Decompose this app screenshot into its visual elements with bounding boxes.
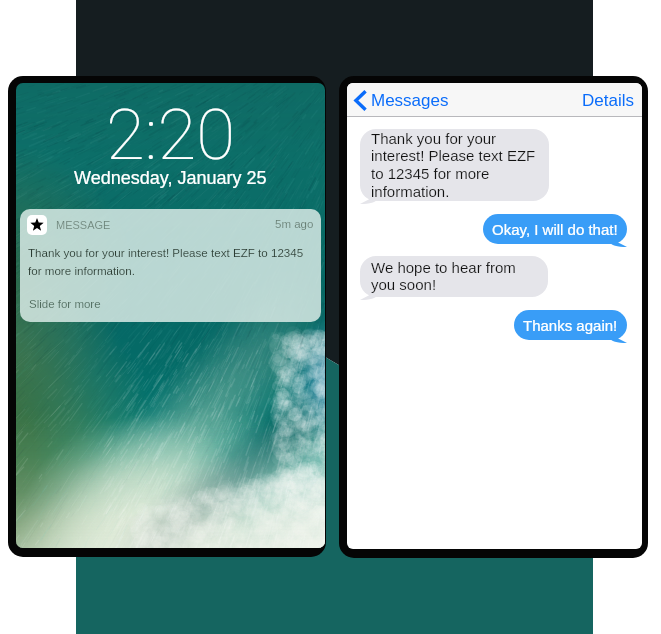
staticText: Thank you for your interest! Please text…: [28, 246, 319, 278]
button[interactable]: Thank you for your interest! Please text…: [360, 129, 555, 205]
staticText: Wednesday, January 25: [74, 168, 267, 188]
button[interactable]: Details: [574, 83, 642, 117]
staticText: Messages: [371, 91, 449, 110]
button[interactable]: Thanks again!: [514, 310, 635, 344]
staticText: Thanks again!: [523, 317, 618, 334]
staticText: Slide for more: [29, 298, 101, 311]
staticText: 5m ago: [275, 218, 314, 231]
staticText: Thank you for your interest! Please text…: [371, 130, 539, 201]
staticText: We hope to hear from you soon!: [371, 259, 538, 294]
button[interactable]: Messages: [347, 83, 457, 117]
button[interactable]: MESSAGE: [20, 209, 321, 322]
staticText: MESSAGE: [56, 219, 111, 231]
staticText: 2:20: [106, 93, 236, 176]
staticText: Details: [582, 91, 634, 110]
button[interactable]: Okay, I will do that!: [483, 214, 635, 248]
staticText: Okay, I will do that!: [492, 221, 618, 238]
button[interactable]: We hope to hear from you soon!: [360, 256, 554, 301]
